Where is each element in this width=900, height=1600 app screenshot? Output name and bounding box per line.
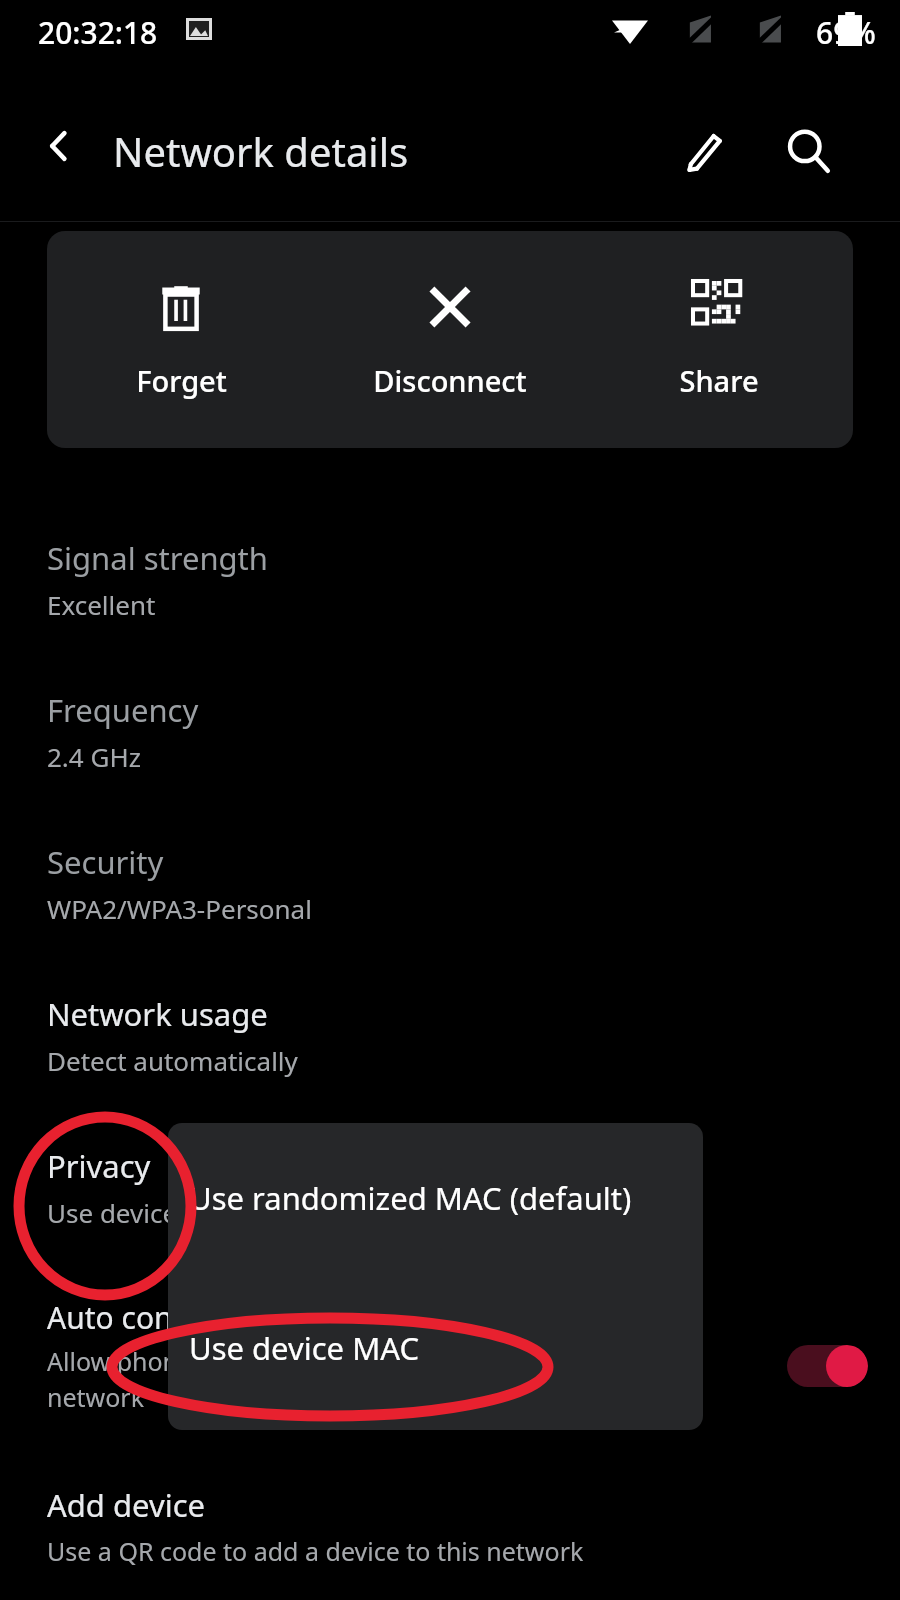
staticText: Privacy bbox=[47, 1145, 151, 1187]
staticText: network bbox=[47, 1380, 145, 1414]
staticText: 20:32:18 bbox=[38, 12, 158, 53]
button[interactable]: Use randomized MAC (default) bbox=[168, 1143, 703, 1253]
staticText: Signal strength bbox=[47, 537, 268, 579]
button[interactable]: Security bbox=[0, 841, 900, 951]
button[interactable]: Edit bbox=[668, 115, 740, 187]
staticText: Share bbox=[679, 361, 759, 400]
button[interactable]: Frequency bbox=[0, 689, 900, 799]
staticText: Use randomized MAC (default) bbox=[189, 1177, 632, 1219]
staticText: Use device MAC bbox=[189, 1327, 420, 1369]
staticText: Network usage bbox=[47, 993, 268, 1035]
button[interactable]: Search bbox=[772, 115, 844, 187]
staticText: Forget bbox=[136, 361, 227, 400]
staticText: Add device bbox=[47, 1484, 206, 1526]
staticText: Disconnect bbox=[373, 361, 527, 400]
button[interactable]: Auto connect bbox=[0, 1297, 900, 1432]
button[interactable]: Auto connect toggle bbox=[787, 1345, 868, 1387]
button[interactable]: Add device bbox=[0, 1484, 900, 1600]
button[interactable]: Use device MAC bbox=[168, 1293, 703, 1403]
staticText: Excellent bbox=[47, 587, 156, 622]
staticText: 2.4 GHz bbox=[47, 739, 141, 774]
staticText: Auto connect bbox=[47, 1297, 234, 1338]
button[interactable]: Forget bbox=[47, 231, 315, 400]
staticText: 69% bbox=[816, 12, 876, 53]
staticText: Frequency bbox=[47, 689, 199, 731]
staticText: Detect automatically bbox=[47, 1043, 298, 1078]
button[interactable]: Disconnect bbox=[315, 231, 584, 400]
button[interactable]: Privacy bbox=[0, 1145, 900, 1255]
staticText: Network details bbox=[113, 124, 409, 178]
button[interactable]: Signal strength bbox=[0, 537, 900, 647]
staticText: WPA2/WPA3-Personal bbox=[47, 891, 312, 926]
button[interactable]: Share bbox=[584, 231, 853, 400]
staticText: Use device MAC bbox=[47, 1195, 240, 1230]
button[interactable]: Back bbox=[28, 115, 90, 177]
staticText: Allow phone to connect to this bbox=[47, 1344, 403, 1378]
staticText: Security bbox=[47, 841, 164, 883]
button[interactable]: Network usage bbox=[0, 993, 900, 1103]
staticText: Use a QR code to add a device to this ne… bbox=[47, 1534, 584, 1568]
